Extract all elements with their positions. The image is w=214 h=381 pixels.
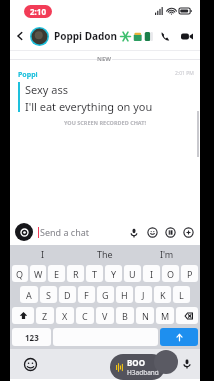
button[interactable]: I	[12, 245, 74, 263]
button[interactable]: Enter	[160, 328, 198, 346]
button[interactable]: Add	[182, 226, 195, 239]
staticText: D	[64, 289, 71, 301]
button[interactable]: Profile	[30, 27, 49, 46]
button[interactable]: Microphone	[181, 358, 193, 370]
button[interactable]: Voice call	[154, 25, 176, 47]
staticText: W	[34, 268, 43, 280]
staticText: R	[73, 268, 79, 280]
staticText: C	[82, 310, 88, 322]
staticText: H	[121, 289, 128, 301]
staticText: V	[102, 310, 108, 322]
button[interactable]: P	[181, 265, 198, 282]
button[interactable]: S	[40, 286, 57, 303]
staticText: 123	[25, 332, 39, 343]
button[interactable]: K	[154, 286, 171, 303]
staticText: A	[26, 289, 32, 301]
button[interactable]: Shift	[12, 307, 34, 324]
staticText: Send a chat	[40, 226, 90, 238]
staticText: 2:10	[30, 6, 46, 17]
staticText: G	[102, 289, 109, 301]
staticText: N	[142, 310, 149, 322]
staticText: S	[46, 289, 51, 301]
staticText: Sexy ass	[25, 82, 69, 97]
staticText: I	[41, 248, 45, 260]
staticText: J	[142, 289, 145, 301]
button[interactable]: M	[156, 307, 174, 324]
button[interactable]: X	[56, 307, 74, 324]
staticText: M	[161, 310, 170, 322]
button[interactable]: R	[67, 265, 84, 282]
button[interactable]: Send a chat	[38, 226, 127, 238]
staticText: B	[122, 310, 128, 322]
staticText: H3adband	[127, 368, 159, 377]
button[interactable]: F	[78, 286, 95, 303]
button[interactable]: Emoji	[146, 226, 159, 239]
button[interactable]: 123	[12, 328, 51, 346]
staticText: Q	[16, 268, 24, 280]
button[interactable]: Y	[105, 265, 122, 282]
button[interactable]: Voice note	[127, 226, 140, 239]
button[interactable]: V	[96, 307, 114, 324]
button[interactable]: J	[135, 286, 152, 303]
staticText: U	[129, 268, 136, 280]
staticText: L	[179, 289, 184, 301]
staticText: E	[54, 268, 60, 280]
button[interactable]: Assistant	[154, 350, 178, 374]
staticText: X	[62, 310, 68, 322]
staticText: BOO	[127, 357, 145, 368]
button[interactable]: A	[20, 286, 38, 303]
staticText: I'll eat everything on you	[25, 99, 153, 114]
button[interactable]: D	[59, 286, 76, 303]
button[interactable]: Back	[10, 26, 30, 46]
button[interactable]: W	[30, 265, 46, 282]
other: Shift	[19, 311, 28, 320]
button[interactable]: G	[97, 286, 114, 303]
button[interactable]: E	[48, 265, 65, 282]
button[interactable]: Backspace	[176, 307, 198, 324]
staticText: K	[160, 289, 166, 301]
staticText: F	[84, 289, 89, 301]
staticText: T	[92, 268, 98, 280]
staticText: O	[167, 268, 175, 280]
button[interactable]: Camera	[15, 223, 33, 241]
staticText: The	[97, 248, 113, 260]
staticText: Poppi Dadon	[54, 29, 118, 43]
button[interactable]: U	[124, 265, 141, 282]
button[interactable]: Emoji keyboard	[24, 358, 37, 371]
button[interactable]: L	[173, 286, 190, 303]
staticText: P	[187, 268, 193, 280]
button[interactable]: I	[143, 265, 160, 282]
button[interactable]: C	[76, 307, 94, 324]
staticText: I	[150, 268, 154, 280]
staticText: YOU SCREEN RECORDED CHAT!	[64, 119, 147, 126]
staticText: 2:01 PM	[175, 70, 194, 77]
button[interactable]: H	[116, 286, 133, 303]
button[interactable]: I'm	[136, 245, 198, 263]
button[interactable]: Z	[36, 307, 54, 324]
button[interactable]: Q	[12, 265, 28, 282]
other: Backspace	[182, 312, 193, 320]
button[interactable]: T	[86, 265, 103, 282]
staticText: Poppi	[18, 70, 38, 80]
button[interactable]: BOO	[110, 354, 165, 380]
staticText: I'm	[160, 248, 174, 260]
button[interactable]: N	[136, 307, 154, 324]
button[interactable]: The	[74, 245, 136, 263]
staticText: NEW	[97, 55, 112, 63]
button[interactable]: O	[162, 265, 179, 282]
button[interactable]: Sticker	[164, 226, 177, 239]
button[interactable]: B	[116, 307, 134, 324]
staticText: Y	[111, 268, 117, 280]
staticText: Z	[42, 310, 48, 322]
button[interactable]: Video call	[176, 25, 198, 47]
